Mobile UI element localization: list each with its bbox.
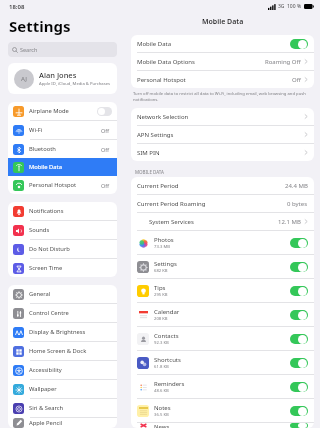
staticText: Shortcuts: [154, 356, 181, 364]
button[interactable]: Current Period Roaming: [131, 195, 314, 212]
button[interactable]: Wi-Fi: [8, 121, 117, 139]
staticText: Airplane Mode: [29, 107, 97, 115]
staticText: Notifications: [29, 207, 112, 215]
button[interactable]: On: [290, 334, 308, 344]
button[interactable]: On: [290, 238, 308, 248]
button[interactable]: Settings: [131, 255, 314, 278]
staticText: 61.8 KB: [154, 364, 169, 370]
button[interactable]: Control Centre: [8, 304, 117, 322]
staticText: Contacts: [154, 332, 179, 340]
button[interactable]: SIM PIN: [131, 144, 314, 161]
staticText: Off: [101, 127, 110, 134]
staticText: 36.5 KB: [154, 412, 169, 418]
button[interactable]: Notes: [131, 399, 314, 422]
button[interactable]: Search: [8, 42, 117, 57]
staticText: Display & Brightness: [29, 328, 112, 336]
staticText: 0 bytes: [287, 200, 308, 208]
button[interactable]: Calendar: [131, 303, 314, 326]
button[interactable]: Shortcuts: [131, 351, 314, 374]
staticText: Tips: [154, 284, 166, 292]
staticText: Accessibility: [29, 366, 112, 374]
button[interactable]: Mobile Data: [131, 35, 314, 52]
staticText: 295 KB: [154, 292, 168, 298]
staticText: Turn off mobile data to restrict all dat…: [133, 91, 312, 102]
button[interactable]: Personal Hotspot: [131, 71, 314, 88]
staticText: Current Period: [137, 182, 285, 190]
staticText: 682 KB: [154, 268, 168, 274]
button[interactable]: On: [290, 382, 308, 392]
staticText: Personal Hotspot: [137, 76, 292, 84]
staticText: Search: [20, 46, 38, 53]
button[interactable]: On: [290, 39, 308, 49]
button[interactable]: Mobile Data: [8, 158, 117, 176]
button[interactable]: Current Period: [131, 177, 314, 194]
button[interactable]: Mobile Data Options: [131, 53, 314, 70]
staticText: AJ: [21, 75, 27, 83]
button[interactable]: Notifications: [8, 202, 117, 220]
staticText: 208 KB: [154, 316, 168, 322]
staticText: Apple Pencil: [29, 419, 112, 427]
button[interactable]: AJ: [8, 63, 117, 94]
staticText: 100 %: [287, 3, 302, 10]
button[interactable]: Do Not Disturb: [8, 240, 117, 258]
staticText: MOBILE DATA: [135, 169, 164, 175]
button[interactable]: Off: [97, 107, 112, 116]
staticText: Network Selection: [137, 113, 304, 121]
staticText: Off: [101, 146, 110, 153]
button[interactable]: Accessibility: [8, 361, 117, 379]
staticText: Alan Jones: [39, 70, 77, 80]
staticText: Bluetooth: [29, 145, 101, 153]
button[interactable]: Apple Pencil: [8, 418, 117, 428]
staticText: Off: [101, 182, 110, 189]
staticText: Wallpaper: [29, 385, 112, 393]
staticText: Calendar: [154, 308, 180, 316]
button[interactable]: News: [131, 423, 314, 428]
staticText: Off: [292, 76, 301, 84]
button[interactable]: APN Settings: [131, 126, 314, 143]
staticText: Personal Hotspot: [29, 181, 101, 189]
staticText: 24.4 MB: [285, 182, 308, 190]
staticText: 73.3 MB: [154, 244, 170, 250]
button[interactable]: Reminders: [131, 375, 314, 398]
button[interactable]: System Services: [131, 213, 314, 230]
button[interactable]: Bluetooth: [8, 140, 117, 158]
staticText: Home Screen & Dock: [29, 347, 112, 355]
staticText: SIM PIN: [137, 149, 304, 157]
button[interactable]: General: [8, 285, 117, 303]
staticText: Wi-Fi: [29, 126, 101, 134]
button[interactable]: On: [290, 262, 308, 272]
staticText: Screen Time: [29, 264, 112, 272]
button[interactable]: Siri & Search: [8, 399, 117, 417]
staticText: Mobile Data: [137, 40, 290, 48]
button[interactable]: Sounds: [8, 221, 117, 239]
button[interactable]: On: [290, 286, 308, 296]
button[interactable]: Wallpaper: [8, 380, 117, 398]
staticText: 3G: [278, 3, 285, 10]
button[interactable]: Photos: [131, 231, 314, 254]
staticText: Sounds: [29, 226, 112, 234]
staticText: Photos: [154, 236, 174, 244]
button[interactable]: Display & Brightness: [8, 323, 117, 341]
button[interactable]: Screen Time: [8, 259, 117, 277]
button[interactable]: On: [290, 310, 308, 320]
button[interactable]: Personal Hotspot: [8, 176, 117, 194]
staticText: Notes: [154, 404, 171, 412]
button[interactable]: Contacts: [131, 327, 314, 350]
button[interactable]: On: [290, 406, 308, 416]
staticText: Settings: [9, 16, 71, 36]
button[interactable]: Home Screen & Dock: [8, 342, 117, 360]
button[interactable]: On: [290, 423, 308, 428]
staticText: Reminders: [154, 380, 185, 388]
button[interactable]: Network Selection: [131, 108, 314, 125]
staticText: Current Period Roaming: [137, 200, 287, 208]
staticText: Mobile Data: [29, 163, 112, 171]
staticText: APN Settings: [137, 131, 304, 139]
staticText: 92.3 KB: [154, 340, 169, 346]
staticText: 12.1 MB: [278, 218, 301, 226]
staticText: Control Centre: [29, 309, 112, 317]
button[interactable]: Tips: [131, 279, 314, 302]
staticText: Settings: [154, 260, 177, 268]
button[interactable]: On: [290, 358, 308, 368]
staticText: General: [29, 290, 112, 298]
button[interactable]: Airplane Mode: [8, 102, 117, 120]
